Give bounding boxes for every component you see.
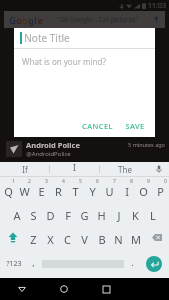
staticText: What is on your mind? [22,56,106,67]
staticText: W [19,184,30,199]
button[interactable]: M [127,225,144,249]
button[interactable]: Note Title [14,28,155,48]
button[interactable]: Recent apps [85,278,127,300]
button[interactable]: Home [43,278,85,300]
button[interactable]: F [59,201,76,225]
button[interactable]: Back [0,278,43,300]
button[interactable]: Enter [139,249,169,278]
button[interactable]: ?123 [0,249,27,278]
button[interactable]: N [110,225,127,249]
button[interactable]: I [50,162,99,176]
staticText: I [125,184,129,199]
button[interactable]: 5 [67,177,84,201]
staticText: B [98,232,106,247]
staticText: G [80,208,89,223]
button[interactable]: X [42,225,59,249]
staticText: "Ok Google... Cat pictures" [57,15,138,24]
button[interactable]: The [100,162,149,176]
staticText: P [157,184,164,199]
button[interactable]: C [59,225,76,249]
staticText: I [73,162,76,173]
staticText: T [72,184,79,199]
staticText: O [139,184,148,199]
staticText: e [37,14,43,26]
staticText: C [64,232,71,247]
button[interactable]: 2 [16,177,33,201]
staticText: ?123 [6,259,22,269]
staticText: E [38,184,45,199]
button[interactable]: A [8,201,25,225]
staticText: S [30,208,37,223]
button[interactable]: J [110,201,127,225]
staticText: M [131,232,141,247]
button[interactable]: Backspace [144,225,169,249]
button[interactable]: 4 [50,177,67,201]
button[interactable]: 8 [118,177,135,201]
button[interactable]: V [76,225,93,249]
button[interactable]: Shift [0,225,25,249]
staticText: 4 [62,178,65,185]
staticText: 0 [164,178,167,185]
button[interactable] [40,249,126,278]
staticText: F [65,208,71,223]
button[interactable]: G [76,201,93,225]
staticText: 8 [130,178,133,185]
button[interactable]: B [93,225,110,249]
staticText: 6 [96,178,99,185]
button[interactable]: 0 [152,177,169,201]
button[interactable]: CANCEL [82,121,113,131]
button[interactable]: G [4,11,165,28]
staticText: Q [4,184,13,199]
button[interactable]: S [25,201,42,225]
staticText: Y [89,184,96,199]
button[interactable]: 3 [33,177,50,201]
staticText: l [34,14,37,26]
staticText: g [28,14,34,26]
button[interactable]: What is on your mind? [14,49,155,117]
staticText: 7 [113,178,116,185]
button[interactable]: K [127,201,144,225]
button[interactable]: SAVE [125,121,145,131]
staticText: , [32,256,35,268]
button[interactable]: 9 [135,177,152,201]
staticText: Z [30,232,37,247]
button[interactable]: D [42,201,59,225]
staticText: ··· [72,170,77,173]
staticText: A [13,208,21,223]
button[interactable]: , [27,249,40,278]
staticText: R [55,184,62,199]
staticText: o [22,14,28,26]
staticText: 2 [28,178,31,185]
staticText: If [22,164,28,175]
staticText: N [114,232,123,247]
staticText: 5 minutes ago [128,141,165,148]
staticText: The [118,164,132,175]
button[interactable]: L [144,201,161,225]
staticText: Note Title [24,31,70,45]
staticText: 1 [12,178,15,185]
staticText: K [132,208,139,223]
staticText: 5 [79,178,82,185]
staticText: X [47,232,54,247]
staticText: D [46,208,55,223]
button[interactable]: H [93,201,110,225]
staticText: 3 [45,178,48,185]
button[interactable]: 7 [101,177,118,201]
staticText: @AndroidPolice [26,150,71,158]
button[interactable]: 1 [0,177,16,201]
staticText: . [131,256,134,268]
staticText: SAVE [125,121,145,131]
staticText: L [150,208,156,223]
button[interactable]: If [0,162,49,176]
staticText: G [9,14,16,26]
other: Voice search [153,16,160,23]
button[interactable]: Voice input [149,162,169,176]
staticText: J [117,208,121,223]
staticText: U [105,184,114,199]
staticText: o [16,14,22,26]
staticText: CANCEL [82,121,113,131]
button[interactable]: Z [25,225,42,249]
button[interactable]: . [126,249,139,278]
button[interactable]: 6 [84,177,101,201]
staticText: V [81,232,88,247]
